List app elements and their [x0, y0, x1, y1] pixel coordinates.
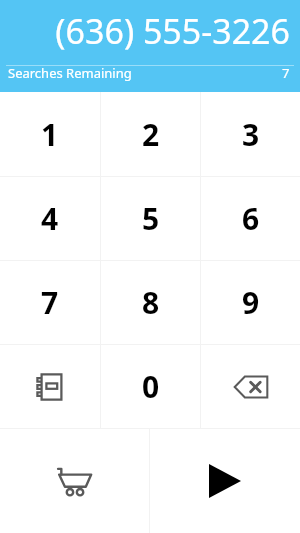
- button[interactable]: Contacts: [0, 345, 100, 428]
- button[interactable]: 5: [101, 177, 200, 260]
- staticText: 2: [142, 114, 160, 155]
- staticText: (636) 555-3226: [0, 8, 290, 54]
- button[interactable]: Cart: [0, 429, 149, 533]
- button[interactable]: 2: [101, 92, 200, 176]
- button[interactable]: 6: [201, 177, 300, 260]
- button[interactable]: Search: [150, 429, 300, 533]
- staticText: 1: [41, 114, 59, 155]
- button[interactable]: 0: [101, 345, 200, 428]
- staticText: 5: [142, 198, 160, 239]
- button[interactable]: Backspace: [201, 345, 300, 428]
- staticText: 3: [242, 114, 260, 155]
- staticText: 8: [142, 282, 160, 323]
- button[interactable]: 7: [0, 261, 100, 344]
- button[interactable]: 1: [0, 92, 100, 176]
- button[interactable]: 4: [0, 177, 100, 260]
- staticText: 4: [41, 198, 59, 239]
- button[interactable]: 9: [201, 261, 300, 344]
- staticText: 7: [41, 282, 59, 323]
- button[interactable]: 8: [101, 261, 200, 344]
- staticText: Searches Remaining: [8, 64, 132, 82]
- staticText: 9: [242, 282, 260, 323]
- staticText: 7: [282, 64, 290, 82]
- staticText: 6: [242, 198, 260, 239]
- staticText: 0: [142, 366, 160, 407]
- button[interactable]: 3: [201, 92, 300, 176]
